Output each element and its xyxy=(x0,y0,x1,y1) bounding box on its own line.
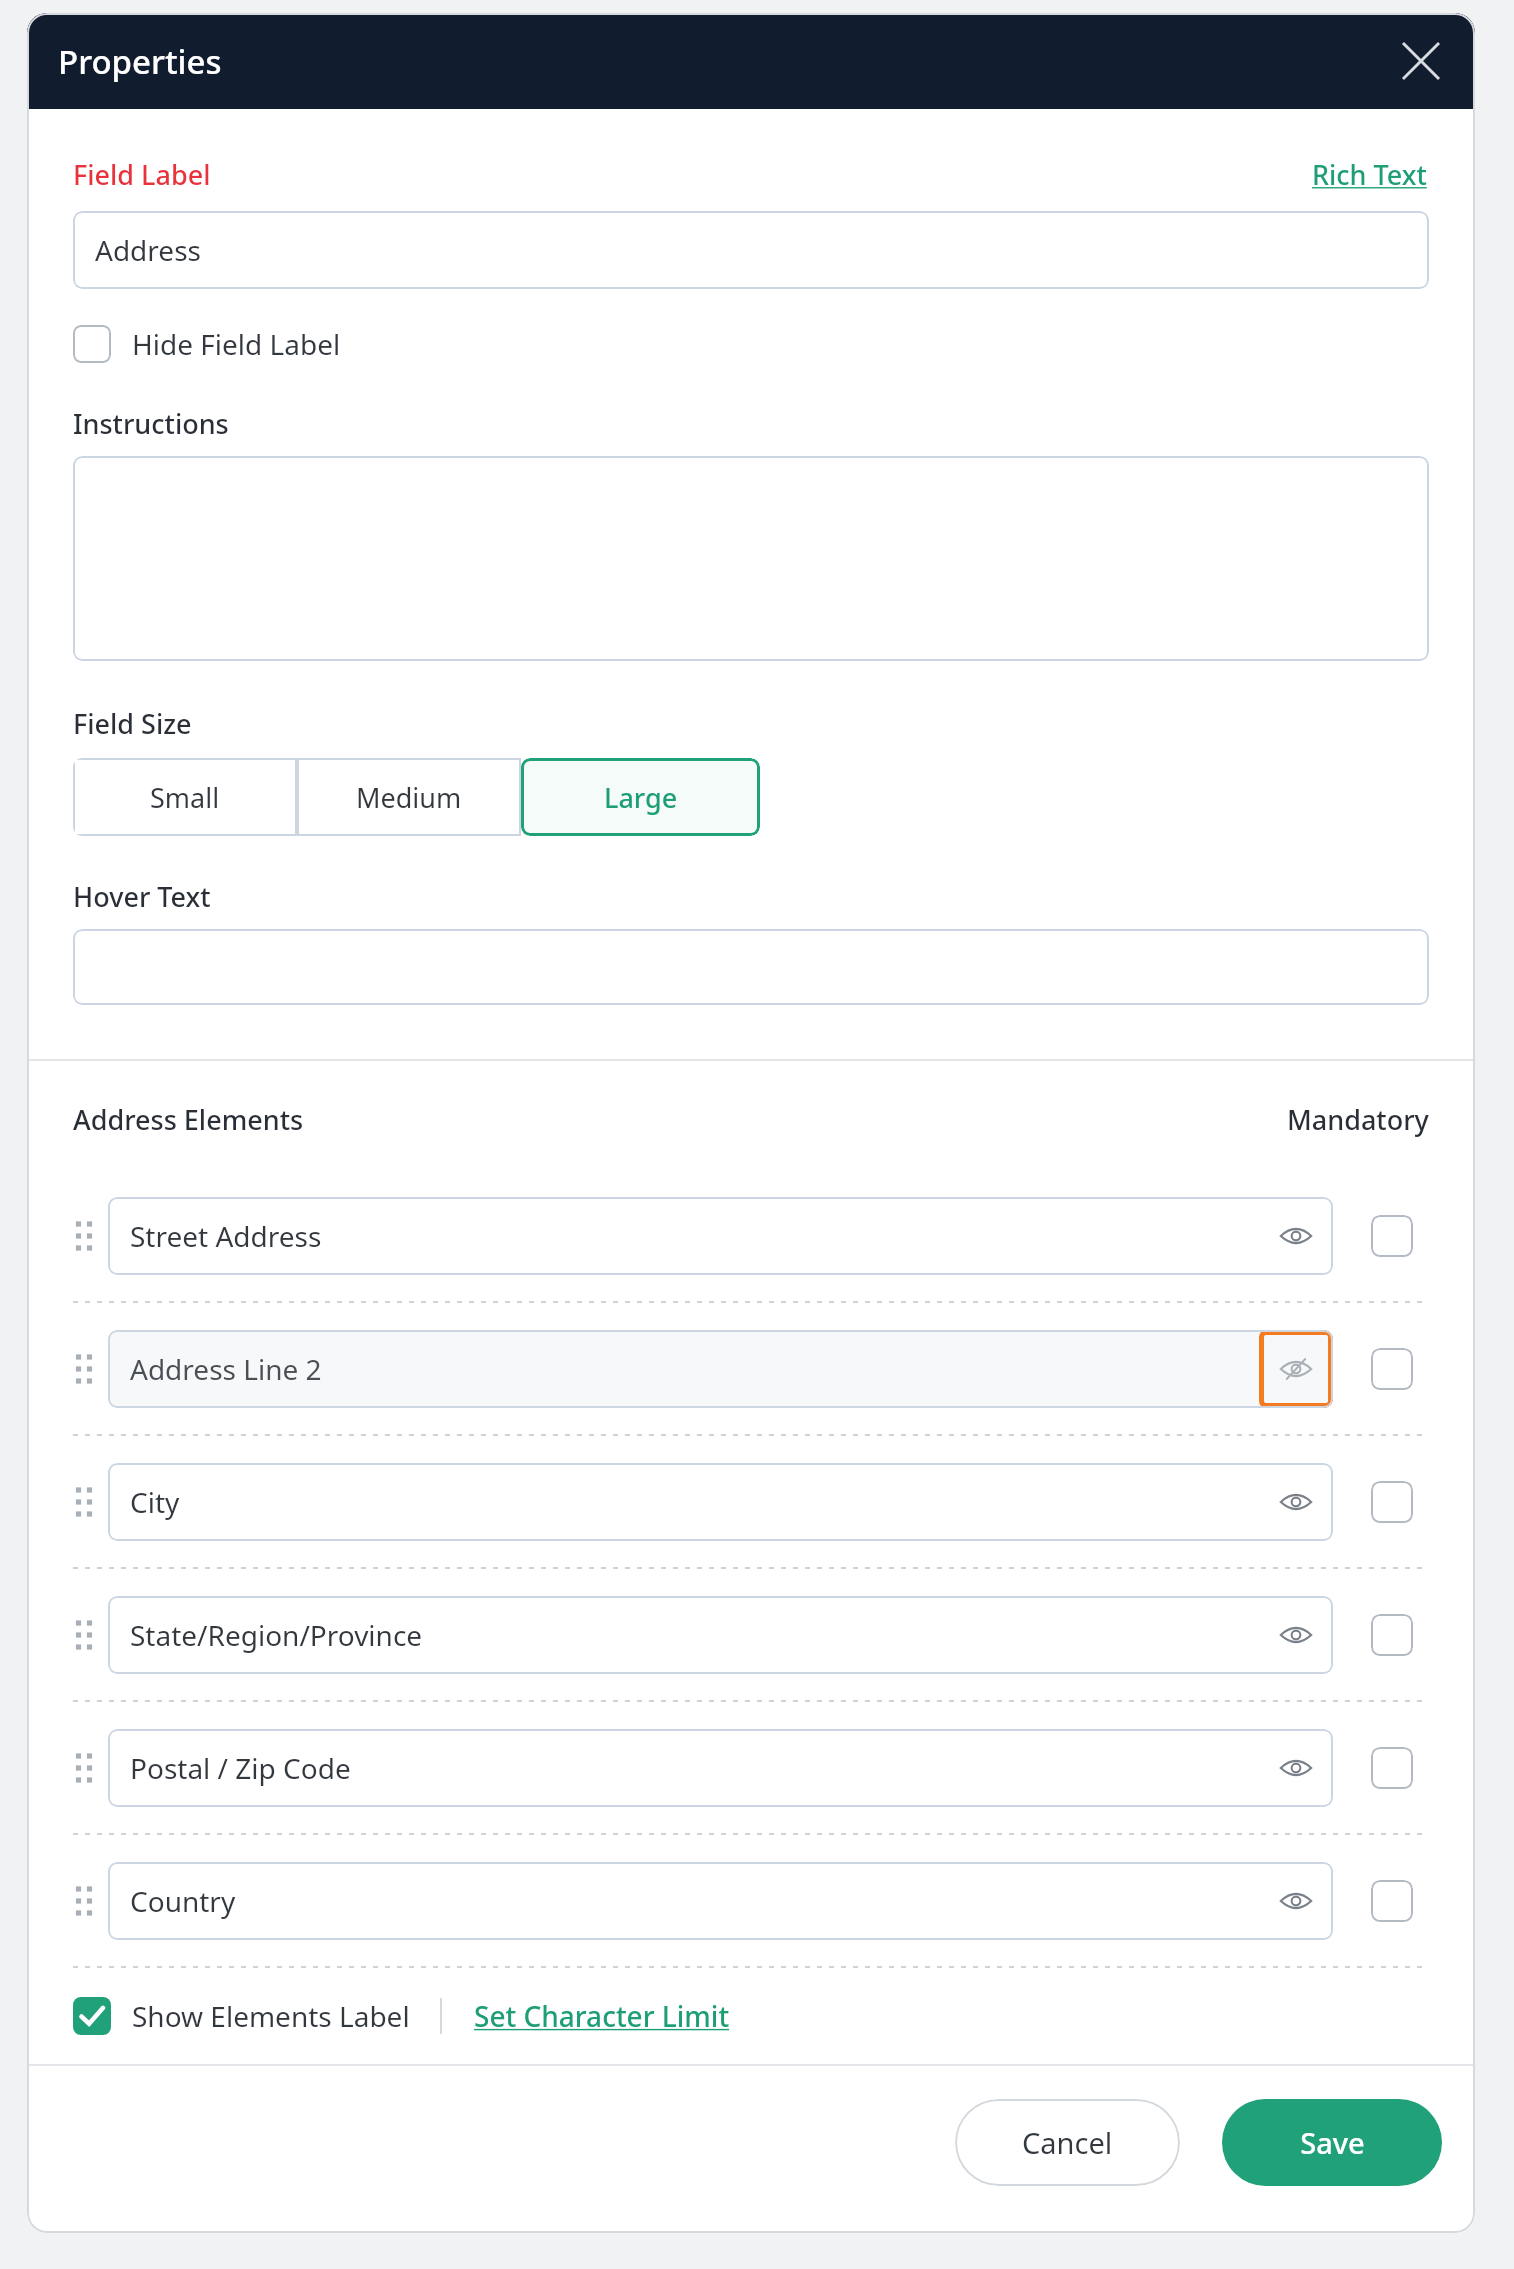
staticText: Country xyxy=(130,1882,236,1920)
button[interactable]: Hide Country xyxy=(1259,1862,1333,1940)
button[interactable]: Reorder Street Address xyxy=(73,1219,95,1253)
button[interactable]: Address Line 2 mandatory xyxy=(1371,1348,1413,1390)
staticText: Rich Text xyxy=(1312,156,1427,193)
staticText: Medium xyxy=(356,779,462,816)
staticText: State/Region/Province xyxy=(130,1616,423,1654)
button[interactable]: Reorder Address Line 2 xyxy=(73,1352,95,1386)
button[interactable]: Rich Text xyxy=(1310,154,1429,195)
staticText: Mandatory xyxy=(1287,1101,1429,1138)
button[interactable]: Postal / Zip Code mandatory xyxy=(1371,1747,1413,1789)
button[interactable]: Reorder Country xyxy=(73,1884,95,1918)
button[interactable]: Country mandatory xyxy=(1371,1880,1413,1922)
staticText: Postal / Zip Code xyxy=(130,1749,351,1787)
staticText: Field Size xyxy=(73,705,192,742)
staticText: Large xyxy=(604,779,678,816)
button[interactable]: Large xyxy=(521,758,760,836)
button[interactable]: Close xyxy=(1392,32,1450,90)
staticText: Street Address xyxy=(130,1217,322,1255)
staticText: Small xyxy=(150,779,220,816)
button[interactable]: Cancel xyxy=(955,2099,1180,2186)
staticText: Address Elements xyxy=(73,1101,304,1138)
staticText: Hover Text xyxy=(73,878,211,915)
button[interactable]: Address xyxy=(73,211,1429,289)
button[interactable]: Hide Field Label xyxy=(73,325,341,363)
button[interactable]: Show Elements Label xyxy=(73,1997,410,2035)
button[interactable]: City mandatory xyxy=(1371,1481,1413,1523)
staticText: Show Elements Label xyxy=(132,1997,410,2035)
button[interactable]: Save xyxy=(1222,2099,1442,2186)
button[interactable]: Hide Street Address xyxy=(1259,1197,1333,1275)
staticText: Properties xyxy=(58,39,222,84)
button[interactable] xyxy=(73,456,1429,661)
button[interactable]: Hide State/Region/Province xyxy=(1259,1596,1333,1674)
staticText: Address Line 2 xyxy=(130,1350,322,1388)
button[interactable]: Hide City xyxy=(1259,1463,1333,1541)
button[interactable]: Medium xyxy=(297,758,521,836)
button[interactable] xyxy=(73,929,1429,1005)
button[interactable]: Reorder State/Region/Province xyxy=(73,1618,95,1652)
button[interactable]: Show Address Line 2 xyxy=(1259,1330,1333,1408)
staticText: Set Character Limit xyxy=(474,1997,730,2035)
staticText: City xyxy=(130,1483,180,1521)
staticText: Instructions xyxy=(73,405,229,442)
staticText: Field Label xyxy=(73,156,211,193)
staticText: Hide Field Label xyxy=(132,325,341,363)
button[interactable]: State/Region/Province mandatory xyxy=(1371,1614,1413,1656)
staticText: Save xyxy=(1300,2123,1365,2162)
staticText: Address xyxy=(95,231,201,269)
button[interactable]: Street Address mandatory xyxy=(1371,1215,1413,1257)
button[interactable]: Set Character Limit xyxy=(472,1995,732,2037)
button[interactable]: Reorder Postal / Zip Code xyxy=(73,1751,95,1785)
button[interactable]: Reorder City xyxy=(73,1485,95,1519)
staticText: Cancel xyxy=(1022,2123,1113,2162)
button[interactable]: Hide Postal / Zip Code xyxy=(1259,1729,1333,1807)
button[interactable]: Small xyxy=(73,758,297,836)
